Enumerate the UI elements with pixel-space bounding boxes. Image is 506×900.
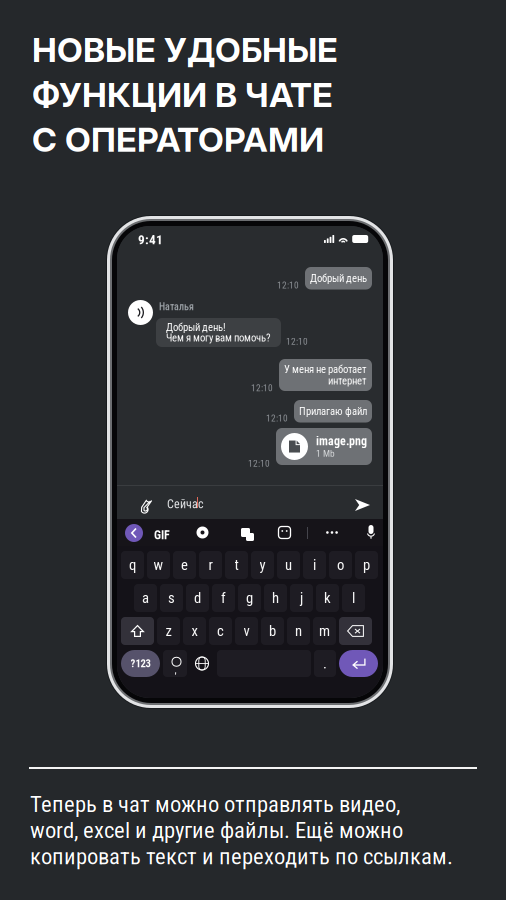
staticText: b <box>269 622 276 640</box>
button[interactable]: . <box>314 650 336 677</box>
button[interactable]: o <box>329 551 352 579</box>
button[interactable]: Attach file <box>135 493 157 517</box>
staticText: n <box>295 622 302 640</box>
button[interactable]: g <box>238 584 261 612</box>
staticText: z <box>165 622 171 640</box>
staticText: интернет <box>328 374 367 387</box>
button[interactable]: m <box>313 617 336 645</box>
staticText: p <box>363 556 370 574</box>
staticText: k <box>324 589 331 607</box>
button[interactable]: f <box>212 584 235 612</box>
button[interactable]: y <box>251 551 274 579</box>
staticText: У меня не работает <box>284 363 367 375</box>
button[interactable]: l <box>342 584 365 612</box>
staticText: 1 Mb <box>316 448 335 459</box>
button[interactable]: h <box>264 584 287 612</box>
staticText: GIF <box>154 528 170 542</box>
staticText: Чем я могу вам помочь? <box>166 331 271 344</box>
button[interactable]: Voice input <box>367 525 375 539</box>
button[interactable]: z <box>157 617 180 645</box>
button[interactable]: q <box>121 551 144 579</box>
button[interactable]: w <box>147 551 170 579</box>
button[interactable]: Send <box>350 494 375 516</box>
button[interactable]: Translate <box>239 526 252 539</box>
staticText: t <box>234 556 238 574</box>
staticText: Добрый день <box>310 272 367 284</box>
staticText: h <box>272 589 279 607</box>
staticText: w <box>153 556 163 574</box>
button[interactable]: p <box>355 551 378 579</box>
staticText: Сейчас <box>167 497 204 511</box>
staticText: 12:10 <box>277 280 299 291</box>
button[interactable]: s <box>160 584 183 612</box>
button[interactable]: r <box>199 551 222 579</box>
staticText: Наталья <box>159 301 194 313</box>
staticText: ФУНКЦИИ В ЧАТЕ <box>32 74 333 115</box>
staticText: r <box>208 556 212 574</box>
button[interactable]: n <box>287 617 310 645</box>
staticText: o <box>337 556 344 574</box>
button[interactable]: a <box>134 584 157 612</box>
staticText: Теперь в чат можно отправлять видео, <box>30 791 400 818</box>
staticText: Добрый день! <box>166 321 226 333</box>
staticText: q <box>129 556 136 574</box>
button[interactable]: e <box>173 551 196 579</box>
staticText: c <box>217 622 224 640</box>
button[interactable]: Change language <box>190 650 214 677</box>
button[interactable]: Return <box>339 650 378 677</box>
button[interactable]: i <box>303 551 326 579</box>
staticText: word, excel и другие файлы. Ещё можно <box>30 817 403 844</box>
button[interactable]: Delete <box>339 617 372 645</box>
staticText: НОВЫЕ УДОБНЫЕ <box>32 29 338 70</box>
button[interactable]: x <box>183 617 206 645</box>
button[interactable]: d <box>186 584 209 612</box>
staticText: u <box>285 556 292 574</box>
staticText: a <box>142 589 149 607</box>
button[interactable]: j <box>290 584 313 612</box>
staticText: s <box>168 589 175 607</box>
staticText: i <box>313 556 316 574</box>
staticText: Прилагаю файл <box>299 405 367 417</box>
button[interactable]: c <box>209 617 232 645</box>
staticText: g <box>246 589 253 607</box>
staticText: f <box>221 589 226 607</box>
staticText: копировать текст и переходить по ссылкам… <box>30 843 453 870</box>
staticText: v <box>243 622 249 640</box>
button[interactable]: Emoji <box>163 650 187 677</box>
button[interactable]: k <box>316 584 339 612</box>
staticText: ?123 <box>130 657 150 670</box>
staticText: 12:10 <box>266 413 288 424</box>
button[interactable]: Settings <box>196 526 209 539</box>
staticText: y <box>259 556 265 574</box>
button[interactable]: b <box>261 617 284 645</box>
button[interactable]: More <box>326 531 338 534</box>
button[interactable]: Back <box>125 524 143 542</box>
staticText: e <box>181 556 188 574</box>
staticText: d <box>194 589 201 607</box>
staticText: , <box>174 663 176 676</box>
button[interactable]: t <box>225 551 248 579</box>
staticText: 12:10 <box>248 458 270 469</box>
staticText: 12:10 <box>251 382 273 393</box>
staticText: l <box>352 589 355 607</box>
staticText: 9:41 <box>138 232 163 248</box>
staticText: m <box>319 622 330 640</box>
staticText: 12:10 <box>286 336 308 347</box>
button[interactable]: u <box>277 551 300 579</box>
button[interactable]: ?123 <box>121 650 160 677</box>
staticText: image.png <box>316 434 367 448</box>
staticText: x <box>191 622 197 640</box>
staticText: С ОПЕРАТОРАМИ <box>32 119 324 160</box>
button[interactable]: Shift <box>121 617 154 645</box>
button[interactable]: v <box>235 617 258 645</box>
staticText: j <box>300 589 303 607</box>
button[interactable]: Stickers <box>278 526 291 539</box>
staticText: . <box>323 655 327 672</box>
